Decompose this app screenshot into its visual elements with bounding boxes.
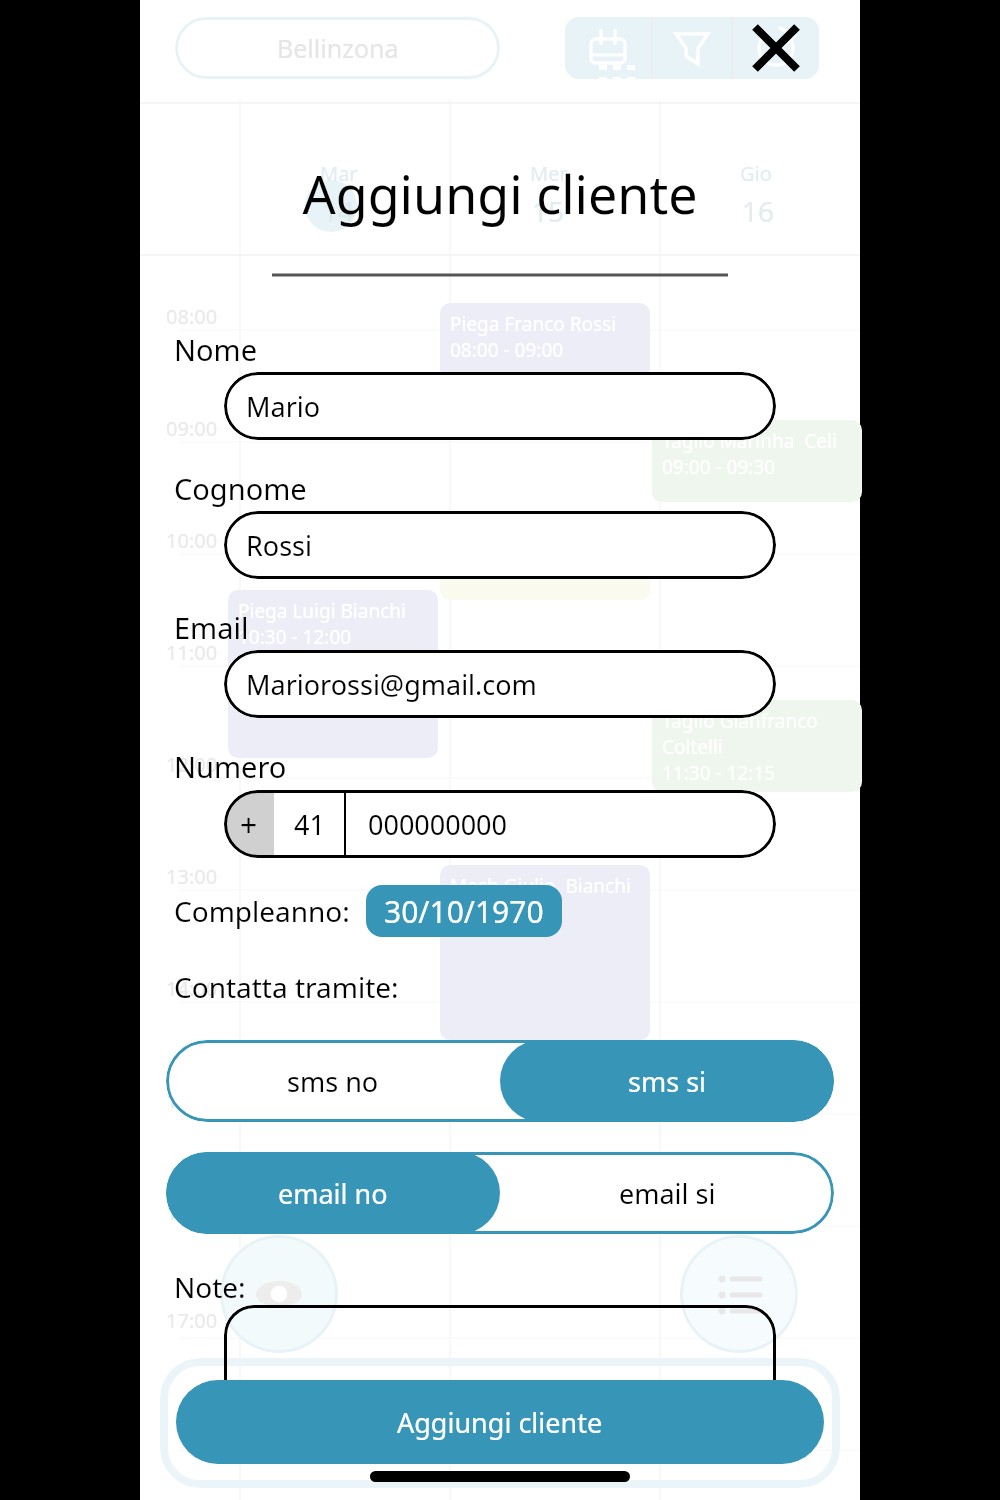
button[interactable]: sms si [500,1040,834,1122]
staticText: 16 [742,192,775,230]
staticText: + [240,804,258,845]
staticText: sms no [287,1063,379,1100]
staticText: Mesh Giulio Bianchi [450,873,631,899]
staticText: Piega Luigi Bianchi [238,598,406,624]
staticText: 11:30 - 12:15 [662,760,776,786]
staticText: Note: [174,1268,246,1306]
button[interactable]: 41 [274,790,344,858]
staticText: Rossi [246,527,312,564]
button[interactable]: 30/10/1970 [384,885,544,937]
staticText: 08:00 [166,303,218,330]
staticText: 11:00 [166,639,218,666]
staticText: Taglio Marinha Celi [662,428,837,454]
button[interactable]: Taglio Gianfranco Coltelli [652,700,862,792]
staticText: Taglio Gianfranco Coltelli [662,708,862,760]
button[interactable] [224,1305,776,1425]
staticText: 15:00 [166,1087,218,1114]
button[interactable]: Aggiungi cliente [176,1380,824,1464]
staticText: 10:00 [166,527,218,554]
button[interactable]: Mario [224,372,776,440]
staticText: Cognome [174,469,307,508]
staticText: 13:00 [166,863,218,890]
staticText: 16:00 [166,1199,218,1226]
staticText: Aggiungi cliente [397,1404,603,1441]
staticText: Bellinzona [277,31,399,65]
staticText: Mario [246,388,321,425]
staticText: 15 [532,192,565,230]
button[interactable]: 000000000 [346,790,776,858]
staticText: Mer [530,160,568,187]
button[interactable] [440,570,650,600]
staticText: Numero [174,747,287,786]
staticText: Piega Franco Rossi [450,311,617,337]
staticText: 14 [322,192,355,230]
button[interactable]: Taglio Marinha Celi [652,420,862,502]
button[interactable]: Piega Luigi Bianchi [228,590,438,758]
staticText: 17:00 [166,1307,218,1334]
button[interactable]: Mesh Giulio Bianchi [440,865,650,1040]
button[interactable]: + [224,790,274,858]
staticText: 41 [294,806,325,843]
button[interactable]: List [680,1235,798,1353]
staticText: 12:00 [166,751,218,778]
staticText: 09:00 [166,415,218,442]
button[interactable]: Calendar [565,17,651,79]
staticText: 08:00 - 09:00 [450,337,564,363]
button[interactable]: email si [500,1152,834,1234]
button[interactable]: sms no [166,1040,500,1122]
button[interactable]: Bellinzona [175,17,500,79]
staticText: email si [619,1175,716,1212]
staticText: Compleanno: [174,892,350,930]
staticText: 30/10/1970 [384,891,544,932]
button[interactable]: Filter [652,17,732,79]
button[interactable]: Rossi [224,511,776,579]
staticText: Mariorossi@gmail.com [246,666,537,703]
staticText: 13:00 - 14:30 [450,899,564,925]
staticText: Gio [740,160,772,187]
staticText: Aggiungi cliente [140,158,860,229]
button[interactable]: Piega Franco Rossi [440,303,650,379]
button[interactable]: Mariorossi@gmail.com [224,650,776,718]
staticText: email no [278,1175,388,1212]
staticText: 09:00 - 09:30 [662,454,776,480]
staticText: 14:00 [166,975,218,1002]
staticText: sms si [628,1063,707,1100]
button[interactable]: email no [166,1152,500,1234]
button[interactable]: Refresh [733,17,819,79]
staticText: Contatta tramite: [174,968,399,1006]
staticText: 10:30 - 12:00 [238,624,352,650]
button[interactable]: Eye [220,1235,338,1353]
staticText: Mar [320,160,358,187]
staticText: 000000000 [368,806,507,843]
staticText: Email [174,608,249,647]
staticText: Nome [174,330,258,369]
